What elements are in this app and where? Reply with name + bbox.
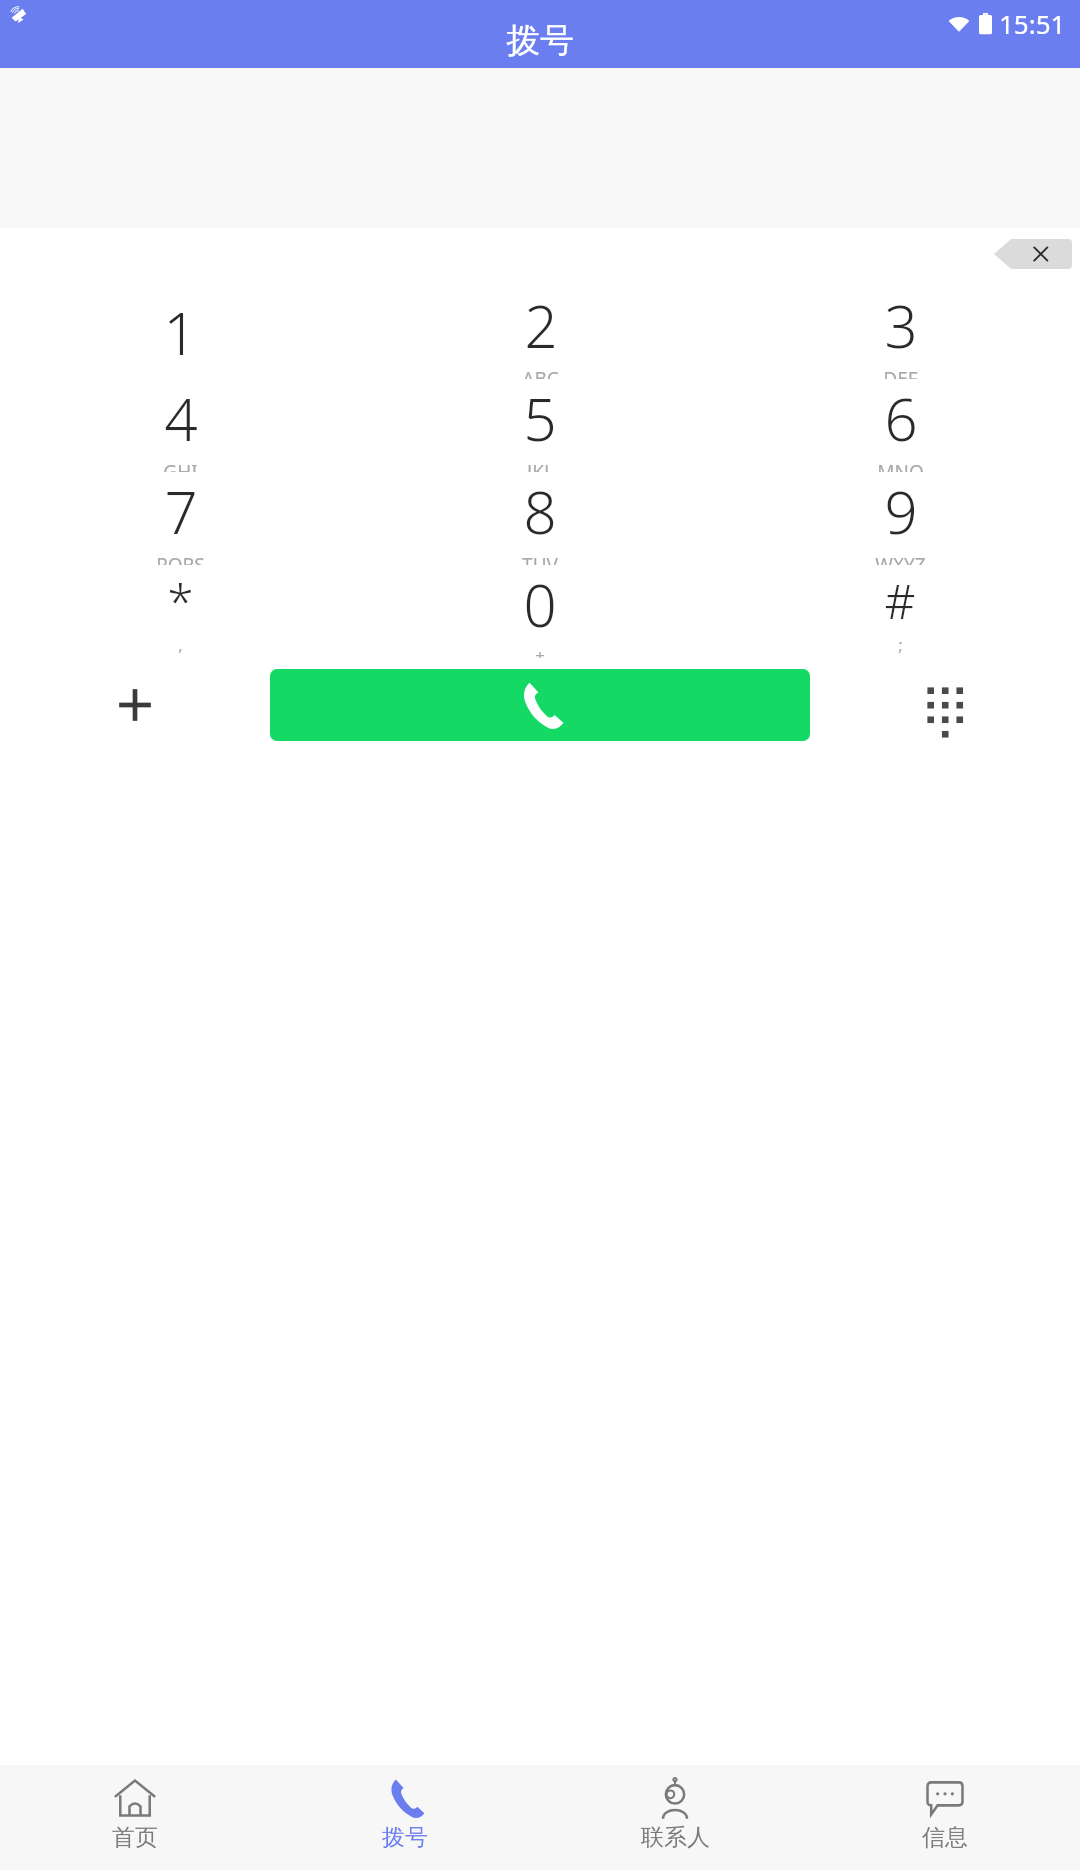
button[interactable]: Call xyxy=(270,669,810,741)
button[interactable]: 8 xyxy=(360,472,720,565)
button[interactable]: # xyxy=(720,565,1080,658)
staticText: # xyxy=(884,568,916,633)
staticText: 1 xyxy=(163,293,197,372)
button[interactable]: Keypad xyxy=(810,666,1080,744)
button[interactable]: * xyxy=(0,565,360,658)
staticText: 8 xyxy=(523,472,557,551)
button[interactable]: 5 xyxy=(360,379,720,472)
button[interactable]: 0 xyxy=(360,565,720,658)
staticText: 首页 xyxy=(112,1823,158,1852)
staticText: * xyxy=(167,568,194,633)
staticText: PQRS xyxy=(156,552,205,565)
staticText: 9 xyxy=(884,472,918,551)
staticText: 3 xyxy=(884,286,918,365)
staticText: 5 xyxy=(523,379,557,458)
button[interactable]: 联系人 xyxy=(540,1765,810,1870)
staticText: 2 xyxy=(524,286,558,365)
staticText: 联系人 xyxy=(641,1823,710,1852)
button[interactable]: 首页 xyxy=(0,1765,270,1870)
staticText: + xyxy=(535,644,545,658)
button[interactable]: 拨号 xyxy=(270,1765,540,1870)
staticText: 拨号 xyxy=(506,19,574,62)
staticText: 0 xyxy=(523,565,557,644)
staticText: 6 xyxy=(884,379,918,458)
button[interactable]: 1 xyxy=(0,286,360,379)
button[interactable]: 9 xyxy=(720,472,1080,565)
button[interactable]: Delete xyxy=(994,239,1072,269)
staticText: 15:51 xyxy=(999,6,1066,41)
button[interactable]: 6 xyxy=(720,379,1080,472)
staticText: ABC xyxy=(522,366,559,379)
button[interactable]: 4 xyxy=(0,379,360,472)
button[interactable]: 7 xyxy=(0,472,360,565)
staticText: GHI xyxy=(163,459,198,472)
button[interactable]: Add xyxy=(0,666,270,744)
staticText: ; xyxy=(898,633,903,656)
staticText: 7 xyxy=(164,472,198,551)
staticText: WXYZ xyxy=(875,552,926,565)
button[interactable]: 3 xyxy=(720,286,1080,379)
staticText: JKL xyxy=(527,459,554,472)
staticText: 4 xyxy=(164,379,198,458)
staticText: 信息 xyxy=(922,1823,968,1852)
staticText: TUV xyxy=(522,552,558,565)
staticText: , xyxy=(178,633,183,656)
button[interactable]: 2 xyxy=(360,286,720,379)
staticText: 拨号 xyxy=(382,1823,428,1852)
staticText: MNO xyxy=(877,459,924,472)
staticText: DEF xyxy=(883,366,918,379)
button[interactable]: 信息 xyxy=(810,1765,1080,1870)
